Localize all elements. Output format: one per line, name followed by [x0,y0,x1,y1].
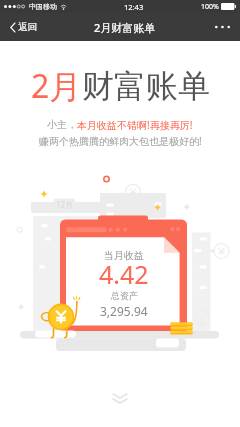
staticText: 赚两个热腾腾的鲜肉大包也是极好的! [39,134,202,148]
button[interactable]: More options [211,16,233,38]
staticText: 总资产 [111,290,138,301]
button[interactable]: 返回 [7,16,40,38]
staticText: 小主， [47,118,77,131]
staticText: 当月收益 [104,249,144,262]
staticText: 12月 [56,199,74,210]
staticText: 3,295.94 [100,303,148,319]
staticText: 4.42 [99,257,149,291]
staticText: 中国移动 [29,2,57,11]
staticText: 2月财富账单 [94,20,156,35]
staticText: 本月收益不错啊!再接再厉! [77,118,193,132]
staticText: 12:43 [124,2,144,12]
staticText: 100% [201,2,219,12]
staticText: 2月 [31,64,82,108]
staticText: 财富账单 [82,66,210,106]
staticText: 返回 [18,21,37,33]
